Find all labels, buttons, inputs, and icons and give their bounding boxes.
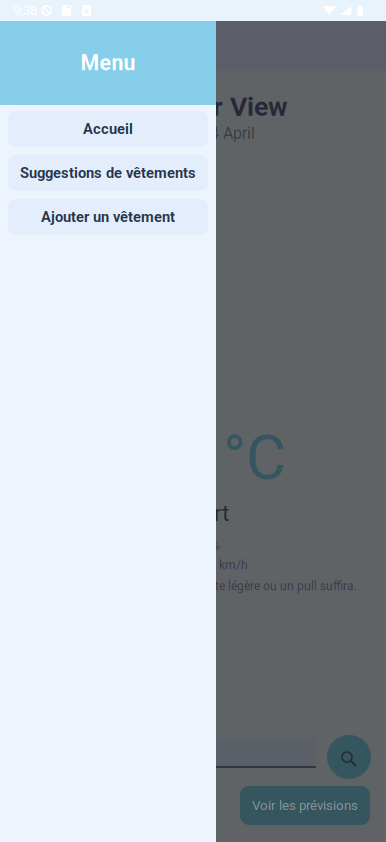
staticText: Voir les prévisions xyxy=(252,798,358,813)
staticText: Une veste légère ou un pull suffira. xyxy=(173,579,357,593)
button[interactable]: Rechercher xyxy=(327,735,371,779)
staticText: Votre Weather View xyxy=(52,91,288,122)
button[interactable]: Voir les prévisions xyxy=(240,786,370,825)
button[interactable]: Suggestions de vêtements xyxy=(8,155,208,191)
staticText: Couvert xyxy=(151,500,229,527)
staticText: Menu xyxy=(80,50,135,75)
staticText: Ajouter un vêtement xyxy=(41,208,175,226)
staticText: Suggestions de vêtements xyxy=(20,164,196,182)
staticText: 9:38 xyxy=(13,3,37,18)
button[interactable]: Ajouter un vêtement xyxy=(8,199,208,235)
staticText: Mercredi 24 April xyxy=(136,124,255,143)
staticText: Humidité : 78 % xyxy=(135,538,220,552)
staticText: 21°C xyxy=(155,422,286,494)
staticText: Accueil xyxy=(83,120,133,138)
button[interactable]: Accueil xyxy=(8,111,208,147)
staticText: Vent : 14 km/h xyxy=(169,558,248,572)
